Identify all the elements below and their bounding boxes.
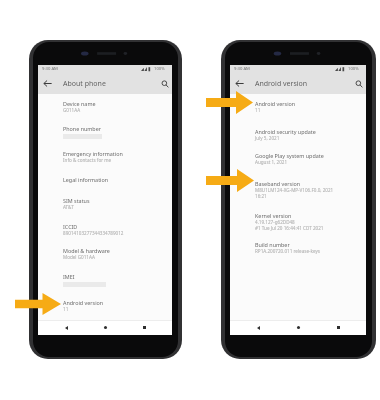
button[interactable]: Model & hardware [38, 241, 172, 267]
staticText: Build number [255, 241, 290, 248]
staticText: Model G011AA [63, 254, 95, 260]
staticText: 16:21 [255, 193, 267, 199]
staticText: Baseband version [255, 180, 301, 187]
staticText: Legal information [63, 176, 109, 183]
button[interactable]: Search [348, 73, 369, 94]
staticText: Info & contacts for me [63, 157, 112, 163]
staticText: 100% [154, 66, 165, 72]
staticText: SIM status [63, 197, 90, 204]
button[interactable]: SIM status [38, 191, 172, 217]
staticText: AT&T [63, 204, 74, 210]
button[interactable]: Kernel version [230, 206, 366, 235]
staticText: #1 Tue Jul 20 16:44:41 CDT 2021 [255, 225, 324, 231]
button[interactable]: Device name [38, 94, 172, 119]
button[interactable]: Build number [230, 235, 366, 261]
staticText: Device name [63, 100, 96, 107]
staticText: Model & hardware [63, 247, 110, 254]
button[interactable]: Android version [38, 293, 172, 318]
staticText: Google Play system update [255, 152, 324, 159]
button[interactable]: Home [86, 320, 125, 335]
staticText: 9:30 AM [234, 66, 250, 72]
staticText: G011AA [63, 107, 81, 113]
staticText: 11 [255, 107, 261, 113]
staticText: 89014103277344334789012 [63, 230, 124, 236]
staticText: 9:30 AM [42, 66, 58, 72]
button[interactable]: Phone number [38, 119, 172, 144]
button[interactable]: Android version [230, 94, 366, 122]
button[interactable]: Home [278, 320, 318, 335]
button[interactable]: Search [154, 73, 175, 94]
button[interactable]: Back [238, 320, 278, 335]
staticText: 11 [63, 306, 69, 312]
staticText: July 5, 2021 [255, 135, 280, 141]
staticText: Android security update [255, 128, 316, 135]
button[interactable]: Legal information [38, 170, 172, 191]
button[interactable]: Back [229, 73, 250, 94]
staticText: IMEI [63, 273, 75, 280]
button[interactable]: Recent apps [318, 320, 358, 335]
staticText: Android version [255, 100, 296, 107]
button[interactable]: Baseband version [230, 174, 366, 206]
staticText: Emergency information [63, 150, 123, 157]
button[interactable]: Android security update [230, 122, 366, 146]
staticText: 4.19.127-g62DD48 [255, 219, 295, 225]
staticText: RP1A.200720.011 release-keys [255, 248, 321, 254]
staticText: M8U1LM124-XG-MP-V106.F0.0, 2021 [255, 187, 334, 193]
button[interactable]: Back [46, 320, 86, 335]
staticText: Phone number [63, 125, 101, 132]
button[interactable]: Google Play system update [230, 146, 366, 174]
staticText: Kernel version [255, 212, 292, 219]
staticText: ICCID [63, 223, 78, 230]
staticText: About phone [63, 79, 150, 89]
button[interactable]: Recent apps [125, 320, 164, 335]
staticText: Android version [255, 79, 344, 89]
button[interactable]: Emergency information [38, 144, 172, 170]
button[interactable]: ICCID [38, 217, 172, 241]
button[interactable]: IMEI [38, 267, 172, 293]
staticText: 100% [348, 66, 359, 72]
staticText: August 1, 2021 [255, 159, 288, 165]
button[interactable]: Back [37, 73, 58, 94]
staticText: Android version [63, 299, 104, 306]
